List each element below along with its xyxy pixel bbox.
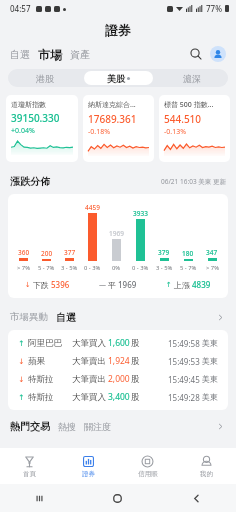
staticText: 美股 xyxy=(107,73,125,84)
button[interactable]: 滬深 xyxy=(157,71,226,85)
staticText: 關注度 xyxy=(84,421,111,432)
staticText: 377 xyxy=(64,248,76,257)
staticText: 美東 xyxy=(202,338,218,348)
staticText: 15:49:45 xyxy=(168,374,200,385)
staticText: 17689.361 xyxy=(88,112,137,126)
staticText: 大筆賣出 xyxy=(72,374,106,385)
staticText: 39150.330 xyxy=(11,111,60,125)
staticText: 1,600 xyxy=(108,337,130,349)
staticText: 379 xyxy=(158,248,170,257)
button[interactable]: 證券 xyxy=(59,448,118,484)
staticText: 股 xyxy=(131,338,140,349)
staticText: 5 - 7% xyxy=(38,264,55,272)
staticText: -0.13% xyxy=(164,127,186,137)
button[interactable]: Search xyxy=(186,44,206,64)
button[interactable]: ↑ xyxy=(8,388,228,406)
button[interactable]: More hot trades xyxy=(214,420,226,432)
staticText: 上漲 xyxy=(174,280,190,290)
staticText: 06/21 16:03 美東 更新 xyxy=(161,177,226,186)
staticText: ↑ xyxy=(18,393,25,402)
button[interactable]: 熱門交易 xyxy=(10,420,50,433)
staticText: 5396 xyxy=(51,279,70,290)
button[interactable]: ↑ xyxy=(8,334,228,352)
staticText: 1969 xyxy=(118,279,137,290)
staticText: 15:49:53 xyxy=(168,356,200,367)
staticText: 標普 500 指數... xyxy=(164,100,214,110)
staticText: 大筆賣出 xyxy=(72,356,106,367)
button[interactable]: 自選 xyxy=(10,48,38,61)
staticText: 首頁 xyxy=(23,470,36,478)
staticText: 道瓊斯指數 xyxy=(11,100,46,109)
staticText: 2,000 xyxy=(108,373,130,385)
staticText: 200 xyxy=(41,249,53,258)
staticText: 544.510 xyxy=(164,112,202,126)
button[interactable]: 港股 xyxy=(10,71,80,85)
staticText: 1,924 xyxy=(108,355,130,367)
staticText: 大筆買入 xyxy=(72,392,106,403)
staticText: 熱搜 xyxy=(58,421,76,432)
staticText: 360 xyxy=(18,248,30,257)
staticText: 自選 xyxy=(56,311,76,324)
staticText: 美東 xyxy=(202,374,218,384)
staticText: 蘋果 xyxy=(28,356,45,367)
staticText: 77% xyxy=(206,3,222,14)
button[interactable]: 標普 500 指數... xyxy=(159,95,230,162)
button[interactable]: 我的 xyxy=(177,448,236,484)
button[interactable]: More xyxy=(214,311,226,323)
button[interactable]: Profile xyxy=(210,46,226,62)
button[interactable]: 熱搜 xyxy=(58,421,76,432)
staticText: 市場異動 xyxy=(10,311,48,323)
button[interactable]: 自選 xyxy=(56,311,76,324)
button[interactable]: ↓ xyxy=(8,370,228,388)
button[interactable]: 360 xyxy=(8,194,228,298)
staticText: 5 - 7% xyxy=(180,264,197,272)
staticText: 股 xyxy=(131,392,140,403)
staticText: 0 - 3% xyxy=(84,264,101,272)
staticText: 信用賬 xyxy=(138,470,158,478)
staticText: 0% xyxy=(112,264,121,272)
staticText: 證券 xyxy=(105,22,131,38)
staticText: 15:49:58 xyxy=(168,338,200,349)
staticText: ↑ xyxy=(166,281,172,289)
button[interactable]: Recents xyxy=(0,484,78,512)
staticText: ↓ xyxy=(18,375,25,384)
staticText: 滬深 xyxy=(183,73,201,84)
staticText: 下跌 xyxy=(33,280,49,290)
staticText: 大筆買入 xyxy=(72,338,106,349)
staticText: 180 xyxy=(182,249,194,258)
staticText: 特斯拉 xyxy=(28,374,54,385)
button[interactable]: 首頁 xyxy=(0,448,59,484)
staticText: 347 xyxy=(206,248,218,257)
button[interactable]: Back xyxy=(157,484,236,512)
staticText: 資產 xyxy=(70,48,90,61)
button[interactable]: 關注度 xyxy=(84,421,111,432)
staticText: 4459 xyxy=(85,203,100,212)
staticText: ↓ xyxy=(25,281,31,289)
button[interactable]: 美股 xyxy=(84,71,153,85)
staticText: 15:49:28 xyxy=(168,392,200,403)
button[interactable]: Home xyxy=(78,484,157,512)
button[interactable]: 信用賬 xyxy=(118,448,177,484)
staticText: — xyxy=(99,280,106,290)
button[interactable]: ↓ xyxy=(8,352,228,370)
button[interactable]: 市場 xyxy=(38,47,70,62)
staticText: +0.04% xyxy=(11,126,35,136)
staticText: 美東 xyxy=(202,392,218,402)
button[interactable]: 道瓊斯指數 xyxy=(6,95,78,162)
staticText: 3933 xyxy=(133,209,148,218)
staticText: ↓ xyxy=(18,357,25,366)
staticText: 4839 xyxy=(192,279,211,290)
staticText: 市場 xyxy=(38,47,62,62)
button[interactable]: 資產 xyxy=(70,48,90,61)
staticText: 漲跌分佈 xyxy=(10,175,50,188)
staticText: 熱門交易 xyxy=(10,420,50,433)
staticText: 3,400 xyxy=(108,391,130,403)
staticText: 1969 xyxy=(109,229,124,238)
staticText: 股 xyxy=(131,374,140,385)
staticText: 納斯達克綜合... xyxy=(88,100,136,110)
button[interactable]: 納斯達克綜合... xyxy=(83,95,154,162)
staticText: 04:57 xyxy=(10,3,31,14)
staticText: 港股 xyxy=(36,73,54,84)
staticText: 平 xyxy=(108,280,116,290)
staticText: -0.18% xyxy=(88,127,110,137)
